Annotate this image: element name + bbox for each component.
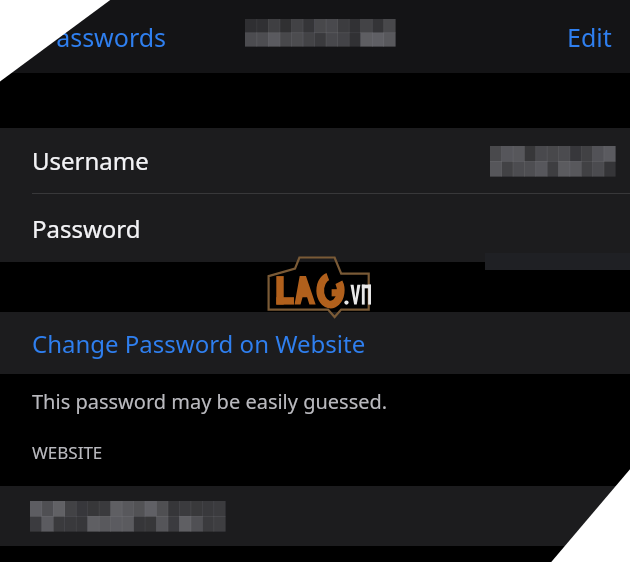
staticText: Edit xyxy=(567,20,612,54)
button[interactable]: Change Password on Website xyxy=(0,312,630,374)
staticText: Password xyxy=(32,212,141,245)
staticText: Username xyxy=(32,144,149,177)
button[interactable]: Username xyxy=(0,128,630,193)
button[interactable]: Edit xyxy=(561,14,618,60)
staticText: Change Password on Website xyxy=(32,327,366,360)
button[interactable] xyxy=(0,486,630,546)
staticText: Passwords xyxy=(41,20,167,54)
button[interactable]: Passwords xyxy=(14,14,171,60)
staticText: This password may be easily guessed. xyxy=(32,388,388,415)
button[interactable]: Password xyxy=(0,194,630,262)
staticText: WEBSITE xyxy=(32,441,103,464)
